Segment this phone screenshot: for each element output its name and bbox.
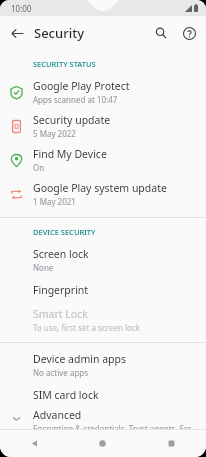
- staticText: Find My Device: [33, 147, 107, 161]
- staticText: DEVICE SECURITY: [33, 227, 96, 237]
- staticText: Google Play system update: [33, 181, 167, 195]
- staticText: 5 May 2022: [33, 128, 76, 139]
- button[interactable]: Find My Device: [0, 143, 206, 177]
- staticText: On: [33, 162, 45, 173]
- staticText: Apps scanned at 10:47: [33, 94, 118, 105]
- button[interactable]: Smart Lock: [0, 303, 206, 337]
- staticText: Google Play Protect: [33, 79, 130, 93]
- staticText: Device admin apps: [33, 352, 127, 366]
- staticText: Security: [34, 24, 84, 42]
- button[interactable]: Security update: [0, 109, 206, 143]
- staticText: Encryption & credentials, Trust agents, …: [33, 423, 198, 429]
- staticText: SIM card lock: [33, 388, 99, 402]
- button[interactable]: Device admin apps: [0, 348, 206, 382]
- staticText: Screen lock: [33, 247, 89, 261]
- button[interactable]: Back: [5, 21, 29, 45]
- button[interactable]: Google Play system update: [0, 177, 206, 211]
- button[interactable]: Recents: [137, 429, 206, 457]
- staticText: Fingerprint: [33, 283, 89, 297]
- button[interactable]: Home: [68, 429, 137, 457]
- staticText: No active apps: [33, 367, 89, 378]
- staticText: Security update: [33, 113, 111, 127]
- button[interactable]: Help: [176, 20, 202, 46]
- staticText: Advanced: [33, 408, 82, 422]
- button[interactable]: Fingerprint: [0, 277, 206, 303]
- staticText: None: [33, 262, 54, 273]
- staticText: To use, first set a screen lock: [33, 322, 140, 333]
- button[interactable]: Screen lock: [0, 243, 206, 277]
- button[interactable]: Google Play Protect: [0, 75, 206, 109]
- staticText: Smart Lock: [33, 307, 88, 321]
- button[interactable]: Search: [148, 20, 174, 46]
- button[interactable]: Back: [0, 429, 68, 457]
- button[interactable]: SIM card lock: [0, 382, 206, 408]
- staticText: 1 May 2021: [33, 196, 76, 207]
- button[interactable]: Advanced: [0, 408, 206, 429]
- staticText: 10:00: [11, 3, 32, 14]
- staticText: SECURITY STATUS: [33, 59, 96, 69]
